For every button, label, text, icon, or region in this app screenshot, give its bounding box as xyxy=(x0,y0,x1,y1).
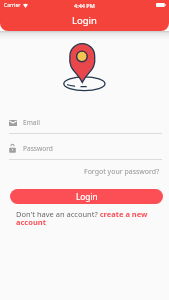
staticText: Login xyxy=(76,191,98,202)
button[interactable]: Forgot your password? xyxy=(82,165,162,179)
staticText: Email xyxy=(23,118,40,127)
staticText: Carrier xyxy=(4,2,21,9)
other: Password xyxy=(9,144,16,153)
staticText: Login xyxy=(72,14,97,27)
other: Email xyxy=(9,120,17,126)
button[interactable]: Don't have an account? create a new acco… xyxy=(16,209,156,228)
staticText: Don't have an account? create a new acco… xyxy=(16,209,156,228)
staticText: 4:44 PM xyxy=(74,2,95,9)
staticText: Password xyxy=(23,144,53,153)
button[interactable]: Login xyxy=(10,189,163,204)
staticText: Forgot your password? xyxy=(84,167,160,177)
